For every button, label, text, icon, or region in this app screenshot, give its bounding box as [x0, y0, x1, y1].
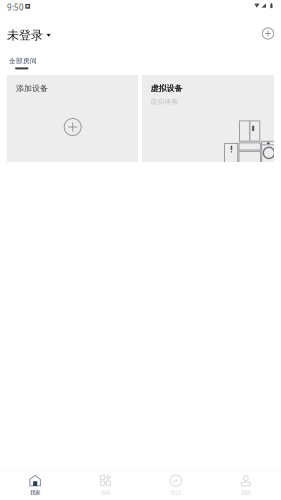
- staticText: 9:50: [7, 2, 24, 13]
- staticText: 全部房间: [9, 57, 37, 65]
- staticText: 未登录: [7, 28, 43, 43]
- staticText: 虚拟设备: [151, 83, 183, 93]
- button[interactable]: Add device: [255, 20, 281, 46]
- button[interactable]: 我的: [211, 470, 281, 500]
- button[interactable]: 生活: [140, 470, 211, 500]
- button[interactable]: 全部房间: [5, 54, 41, 72]
- staticText: 虚拟体验: [151, 97, 179, 106]
- staticText: 添加设备: [16, 83, 48, 93]
- staticText: 生活: [171, 489, 181, 496]
- staticText: 我的: [241, 489, 251, 496]
- button[interactable]: 添加设备: [7, 75, 138, 162]
- button[interactable]: 场景: [70, 470, 140, 500]
- staticText: 场景: [100, 489, 110, 496]
- button[interactable]: 未登录: [0, 22, 58, 49]
- staticText: 我家: [30, 489, 40, 496]
- button[interactable]: 我家: [0, 470, 70, 500]
- button[interactable]: 虚拟设备: [142, 75, 274, 162]
